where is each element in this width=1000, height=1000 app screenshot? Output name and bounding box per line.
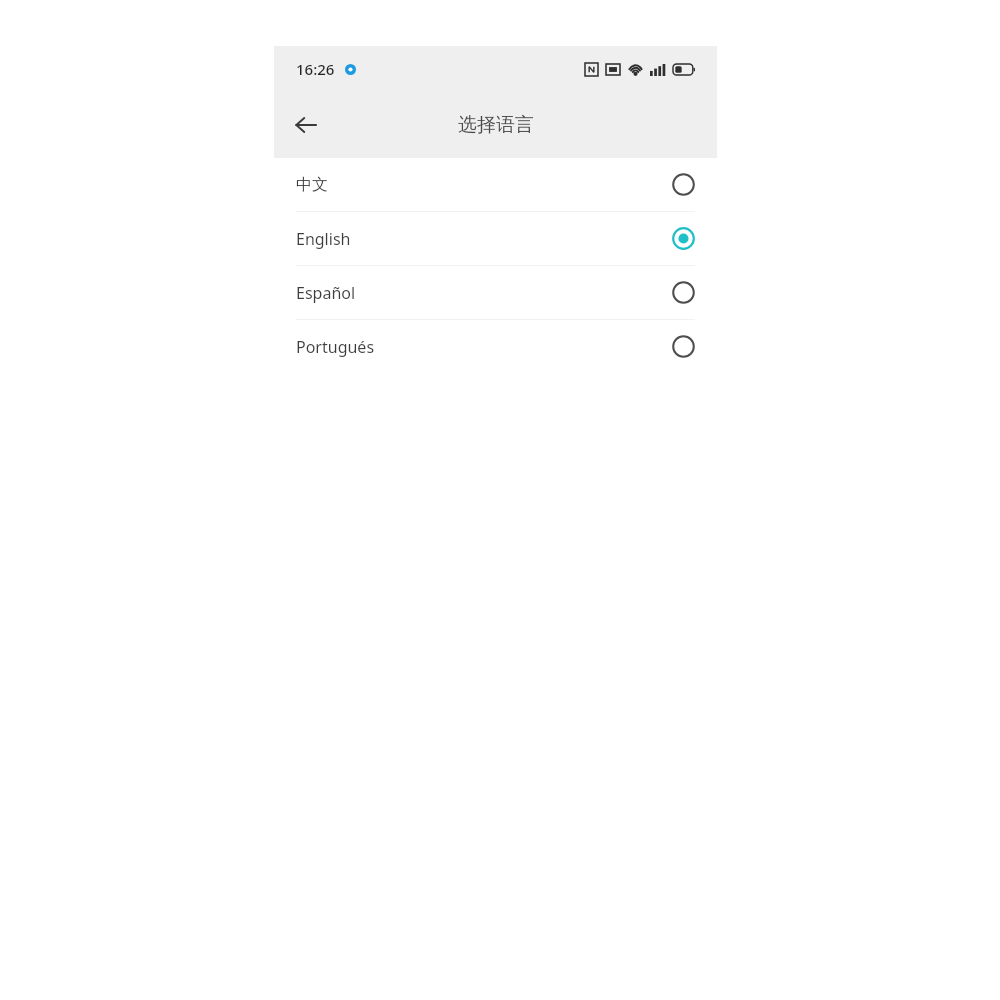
staticText: English [296,228,351,250]
button[interactable]: English [274,212,717,265]
button[interactable]: 中文 [274,158,717,211]
staticText: 选择语言 [458,113,534,137]
staticText: 16:26 [296,59,335,79]
staticText: 中文 [296,175,328,195]
button[interactable]: Portugués [274,320,717,373]
staticText: Portugués [296,336,375,358]
button[interactable]: Español [274,266,717,319]
button[interactable]: Back [282,101,330,149]
staticText: Español [296,282,356,304]
